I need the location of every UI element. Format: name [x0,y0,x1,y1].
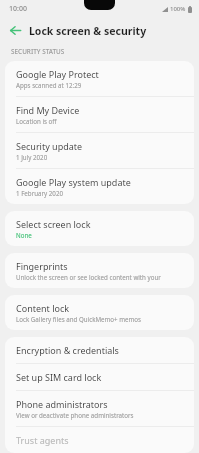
staticText: Find My Device [16,104,80,116]
button[interactable]: Content lock [5,295,194,330]
staticText: Lock Gallery files and QuickMemo+ memos [16,315,142,323]
staticText: Fingerprints [16,260,68,272]
button[interactable]: Find My Device [5,97,194,132]
button[interactable]: Select screen lock [5,211,194,246]
staticText: Google Play Protect [16,68,99,80]
button[interactable]: Google Play Protect [5,61,194,96]
staticText: 1 July 2020 [16,153,48,161]
button[interactable]: Encryption & credentials [5,337,194,363]
staticText: View or deactivate phone administrators [16,411,134,419]
staticText: Select screen lock [16,218,91,230]
staticText: Security update [16,140,83,152]
staticText: None [16,231,32,239]
staticText: Content lock [16,302,70,314]
staticText: Location is off [16,117,57,125]
staticText: 1 February 2020 [16,189,63,197]
staticText: Phone administrators [16,398,108,410]
staticText: Encryption & credentials [16,344,119,356]
staticText: 100% [170,5,186,13]
button[interactable]: Trust agents [5,427,194,453]
staticText: Apps scanned at 12:29 [16,81,82,89]
staticText: Unlock the screen or see locked content … [16,273,185,281]
staticText: 10:00 [9,4,27,14]
staticText: Trust agents [16,434,69,446]
staticText: Lock screen & security [29,24,147,38]
button[interactable]: Security update [5,133,194,168]
button[interactable]: Phone administrators [5,391,194,426]
staticText: Set up SIM card lock [16,371,102,383]
staticText: SECURITY STATUS [11,47,65,56]
button[interactable]: Set up SIM card lock [5,364,194,390]
button[interactable]: Google Play system update [5,169,194,204]
button[interactable]: Back [5,20,26,41]
button[interactable]: Fingerprints [5,253,194,288]
staticText: Google Play system update [16,176,131,188]
